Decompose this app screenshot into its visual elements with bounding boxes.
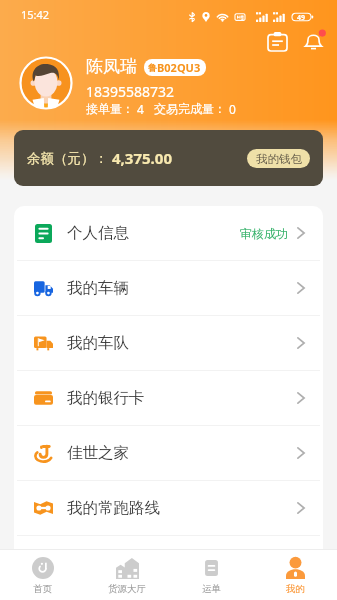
button[interactable]: 余额（元）： bbox=[14, 130, 323, 186]
button[interactable]: 我的钱包 bbox=[247, 149, 310, 168]
staticText: 余额（元）： bbox=[27, 150, 108, 167]
staticText: 0 bbox=[226, 101, 236, 117]
button[interactable]: 我的 bbox=[253, 550, 337, 600]
staticText: 个人信息 bbox=[67, 223, 129, 243]
staticText: 15:42 bbox=[21, 7, 50, 22]
staticText: 首页 bbox=[33, 583, 52, 595]
staticText: 我的车辆 bbox=[67, 278, 129, 298]
staticText: 交易完成量： bbox=[154, 101, 226, 116]
staticText: 我的车队 bbox=[67, 333, 129, 353]
staticText: 18395588732 bbox=[86, 82, 175, 101]
staticText: 接单量： bbox=[86, 101, 134, 116]
staticText: 审核成功 bbox=[240, 226, 288, 241]
staticText: B02QU3 bbox=[157, 60, 201, 75]
staticText: 佳世之家 bbox=[67, 443, 129, 463]
staticText: 我的常跑路线 bbox=[67, 498, 160, 518]
button[interactable]: 我的常跑路线 bbox=[14, 481, 323, 535]
button[interactable]: 我的车辆 bbox=[14, 261, 323, 315]
button[interactable]: Messages bbox=[262, 26, 292, 56]
button[interactable]: 我的银行卡 bbox=[14, 371, 323, 425]
staticText: 4 bbox=[134, 101, 144, 117]
staticText: 4,375.00 bbox=[112, 148, 172, 168]
staticText: 运单 bbox=[202, 583, 221, 595]
button[interactable]: 个人信息 bbox=[14, 206, 323, 260]
button[interactable]: 货源大厅 bbox=[85, 550, 169, 600]
button[interactable]: 运单 bbox=[169, 550, 253, 600]
button[interactable]: Notifications bbox=[298, 26, 328, 56]
staticText: 49 bbox=[297, 13, 306, 22]
button[interactable]: 首页 bbox=[0, 550, 85, 600]
button[interactable]: 我的车队 bbox=[14, 316, 323, 370]
staticText: 货源大厅 bbox=[108, 583, 146, 595]
staticText: 我的银行卡 bbox=[67, 388, 145, 408]
staticText: 我的钱包 bbox=[256, 152, 302, 166]
staticText: 陈凤瑞 bbox=[86, 56, 137, 77]
staticText: 鲁 bbox=[148, 62, 157, 73]
staticText: 我的 bbox=[286, 583, 305, 595]
button[interactable]: 佳世之家 bbox=[14, 426, 323, 480]
